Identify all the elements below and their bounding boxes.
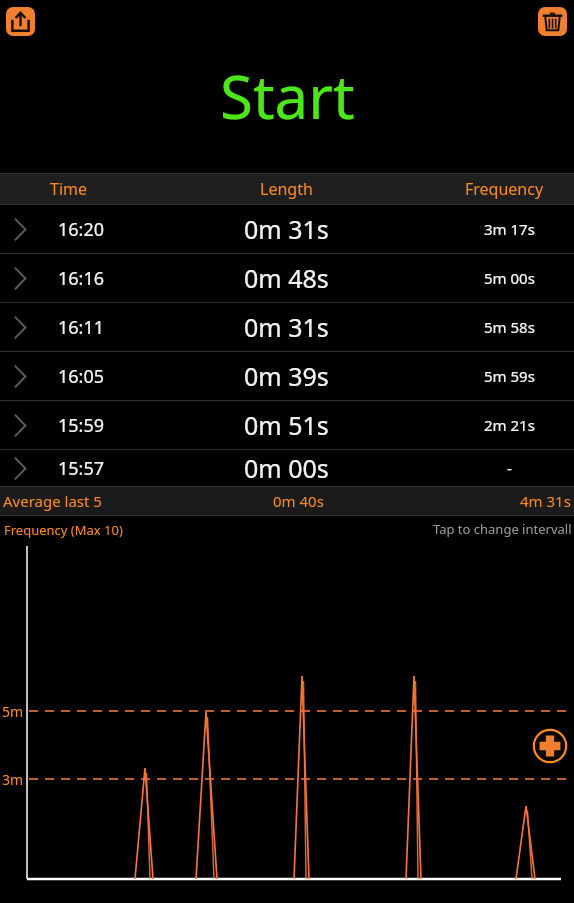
staticText: 3m 17s <box>484 219 535 239</box>
staticText: 0m 31s <box>244 212 329 246</box>
staticText: 4m 31s <box>520 491 571 511</box>
staticText: Tap to change intervall <box>433 520 572 538</box>
button[interactable]: Add <box>532 728 568 764</box>
button[interactable]: 15:59 <box>0 401 574 449</box>
staticText: 0m 51s <box>244 408 329 442</box>
button[interactable]: 16:11 <box>0 303 574 351</box>
button[interactable]: Average last 5 <box>0 487 574 515</box>
button[interactable]: Delete <box>538 7 567 36</box>
staticText: Frequency <box>465 178 544 200</box>
staticText: Start <box>220 55 355 137</box>
staticText: 16:11 <box>58 315 105 340</box>
staticText: 0m 31s <box>244 310 329 344</box>
staticText: - <box>507 458 512 478</box>
button[interactable]: 16:20 <box>0 205 574 253</box>
staticText: Average last 5 <box>3 491 102 511</box>
button[interactable]: Frequency (Max 10) <box>0 516 574 903</box>
button[interactable]: 16:16 <box>0 254 574 302</box>
staticText: 16:05 <box>58 364 105 389</box>
staticText: Frequency (Max 10) <box>4 521 123 539</box>
staticText: 0m 40s <box>273 491 324 511</box>
staticText: 0m 48s <box>244 261 329 295</box>
button[interactable]: 15:57 <box>0 450 574 486</box>
staticText: 2m 21s <box>484 415 535 435</box>
staticText: 5m 59s <box>484 366 535 386</box>
staticText: 5m 00s <box>484 268 535 288</box>
staticText: 3m <box>2 770 24 789</box>
staticText: 0m 00s <box>244 451 329 485</box>
staticText: 5m <box>2 702 24 721</box>
staticText: 15:57 <box>58 456 105 481</box>
staticText: 15:59 <box>58 413 105 438</box>
button[interactable]: Start <box>0 46 574 146</box>
staticText: 0m 39s <box>244 359 329 393</box>
button[interactable]: 16:05 <box>0 352 574 400</box>
staticText: 5m 58s <box>484 317 535 337</box>
staticText: 16:16 <box>58 266 105 291</box>
staticText: Length <box>260 178 313 200</box>
button[interactable]: Share <box>6 7 35 36</box>
staticText: 16:20 <box>58 217 105 242</box>
staticText: Time <box>50 178 88 200</box>
